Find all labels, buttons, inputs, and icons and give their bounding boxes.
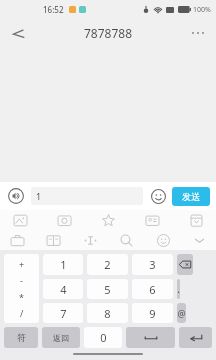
button[interactable]: Back <box>4 19 32 47</box>
staticText: 16:52 <box>43 4 64 15</box>
staticText: 1 <box>60 257 67 272</box>
button[interactable]: Voice input <box>6 186 26 206</box>
staticText: 8 <box>104 306 111 321</box>
button[interactable]: 8 <box>87 303 128 323</box>
button[interactable]: Sticker <box>153 230 173 250</box>
button[interactable]: Photos <box>10 210 30 230</box>
staticText: 2 <box>104 257 111 272</box>
button[interactable]: 3 <box>132 254 173 275</box>
button[interactable]: + <box>4 254 39 323</box>
button[interactable]: More options <box>184 19 212 47</box>
staticText: 5 <box>104 282 111 297</box>
button[interactable]: Favorite <box>98 210 118 230</box>
staticText: @ <box>177 307 186 319</box>
button[interactable]: 返回 <box>42 327 80 348</box>
staticText: 发送 <box>182 191 200 202</box>
button[interactable]: Book <box>43 230 63 250</box>
button[interactable]: @ <box>177 303 186 323</box>
button[interactable]: 2 <box>87 254 128 275</box>
button[interactable]: Briefcase <box>7 230 27 250</box>
button[interactable]: Backspace <box>177 254 193 275</box>
staticText: 符 <box>17 332 26 343</box>
button[interactable]: 1 <box>31 187 143 205</box>
button[interactable]: 发送 <box>172 187 210 206</box>
staticText: 100% <box>193 5 211 15</box>
staticText: 9 <box>149 306 156 321</box>
staticText: 返回 <box>53 333 69 343</box>
staticText: . <box>177 282 180 296</box>
button[interactable]: 5 <box>87 279 128 299</box>
button[interactable]: Emoji <box>148 186 168 206</box>
staticText: 0 <box>100 330 107 345</box>
staticText: + <box>19 258 25 270</box>
staticText: 7878788 <box>84 25 133 41</box>
staticText: 3 <box>149 257 156 272</box>
button[interactable]: Calendar <box>186 210 206 230</box>
button[interactable]: 7 <box>43 303 83 323</box>
staticText: 6 <box>149 282 156 297</box>
staticText: - <box>20 274 23 286</box>
button[interactable]: Camera <box>54 210 74 230</box>
button[interactable]: 6 <box>132 279 173 299</box>
staticText: 7 <box>60 306 67 321</box>
staticText: * <box>19 291 24 303</box>
button[interactable]: Enter <box>179 327 212 348</box>
staticText: 1 <box>36 190 42 202</box>
button[interactable]: Location <box>80 230 100 250</box>
button[interactable]: Collapse <box>189 230 209 250</box>
staticText: 4 <box>60 282 67 297</box>
button[interactable]: Space <box>126 327 175 348</box>
button[interactable]: 0 <box>84 327 122 348</box>
button[interactable]: 4 <box>43 279 83 299</box>
staticText: / <box>20 307 24 319</box>
button[interactable]: 1 <box>43 254 83 275</box>
button[interactable]: Card <box>142 210 162 230</box>
button[interactable]: . <box>177 279 180 299</box>
button[interactable]: 9 <box>132 303 173 323</box>
button[interactable]: 符 <box>4 327 38 348</box>
button[interactable]: Search <box>116 230 136 250</box>
